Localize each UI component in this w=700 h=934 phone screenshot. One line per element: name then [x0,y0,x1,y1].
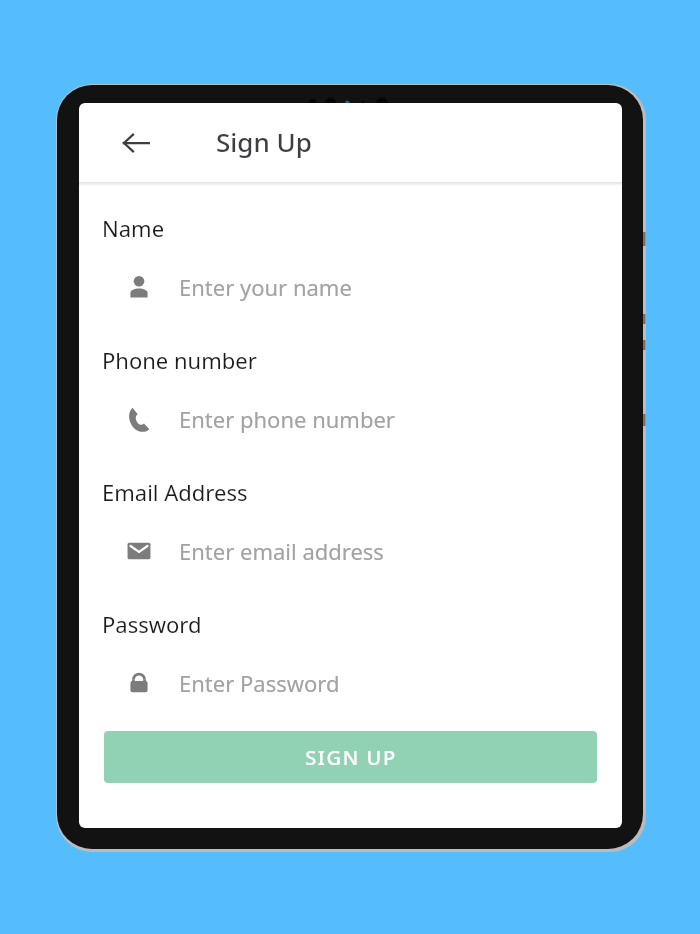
staticText: Email Address [102,477,248,507]
staticText: Enter your name [179,272,352,302]
button[interactable]: Enter email address [79,529,622,573]
staticText: Enter Password [179,668,340,698]
button[interactable]: Enter your name [79,265,622,309]
staticText: Sign Up [216,124,312,159]
staticText: SIGN UP [305,744,397,771]
staticText: Password [102,609,202,639]
button[interactable]: Enter Password [79,661,622,705]
staticText: Name [102,213,165,243]
staticText: Enter email address [179,536,384,566]
button[interactable]: SIGN UP [104,731,597,783]
button[interactable]: Back [112,119,160,167]
staticText: Enter phone number [179,404,395,434]
button[interactable]: Enter phone number [79,397,622,441]
staticText: Phone number [102,345,257,375]
